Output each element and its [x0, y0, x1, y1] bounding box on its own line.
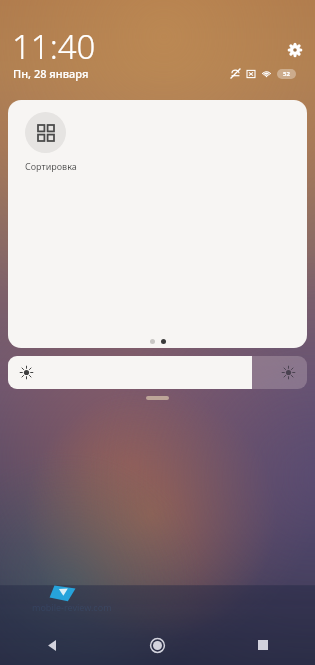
button[interactable]: Сортировка [25, 112, 77, 172]
button[interactable]: Settings [283, 38, 307, 62]
staticText: mobile-review.com [32, 601, 112, 613]
button[interactable]: Brightness [8, 356, 307, 389]
button[interactable]: Back [0, 625, 105, 665]
staticText: 11:40 [12, 24, 96, 69]
staticText: Пн, 28 января [13, 66, 89, 81]
staticText: 52 [283, 70, 290, 78]
button[interactable] [146, 396, 169, 400]
button[interactable]: Home [105, 625, 210, 665]
staticText: Сортировка [25, 160, 77, 172]
button[interactable]: Recent apps [210, 625, 315, 665]
